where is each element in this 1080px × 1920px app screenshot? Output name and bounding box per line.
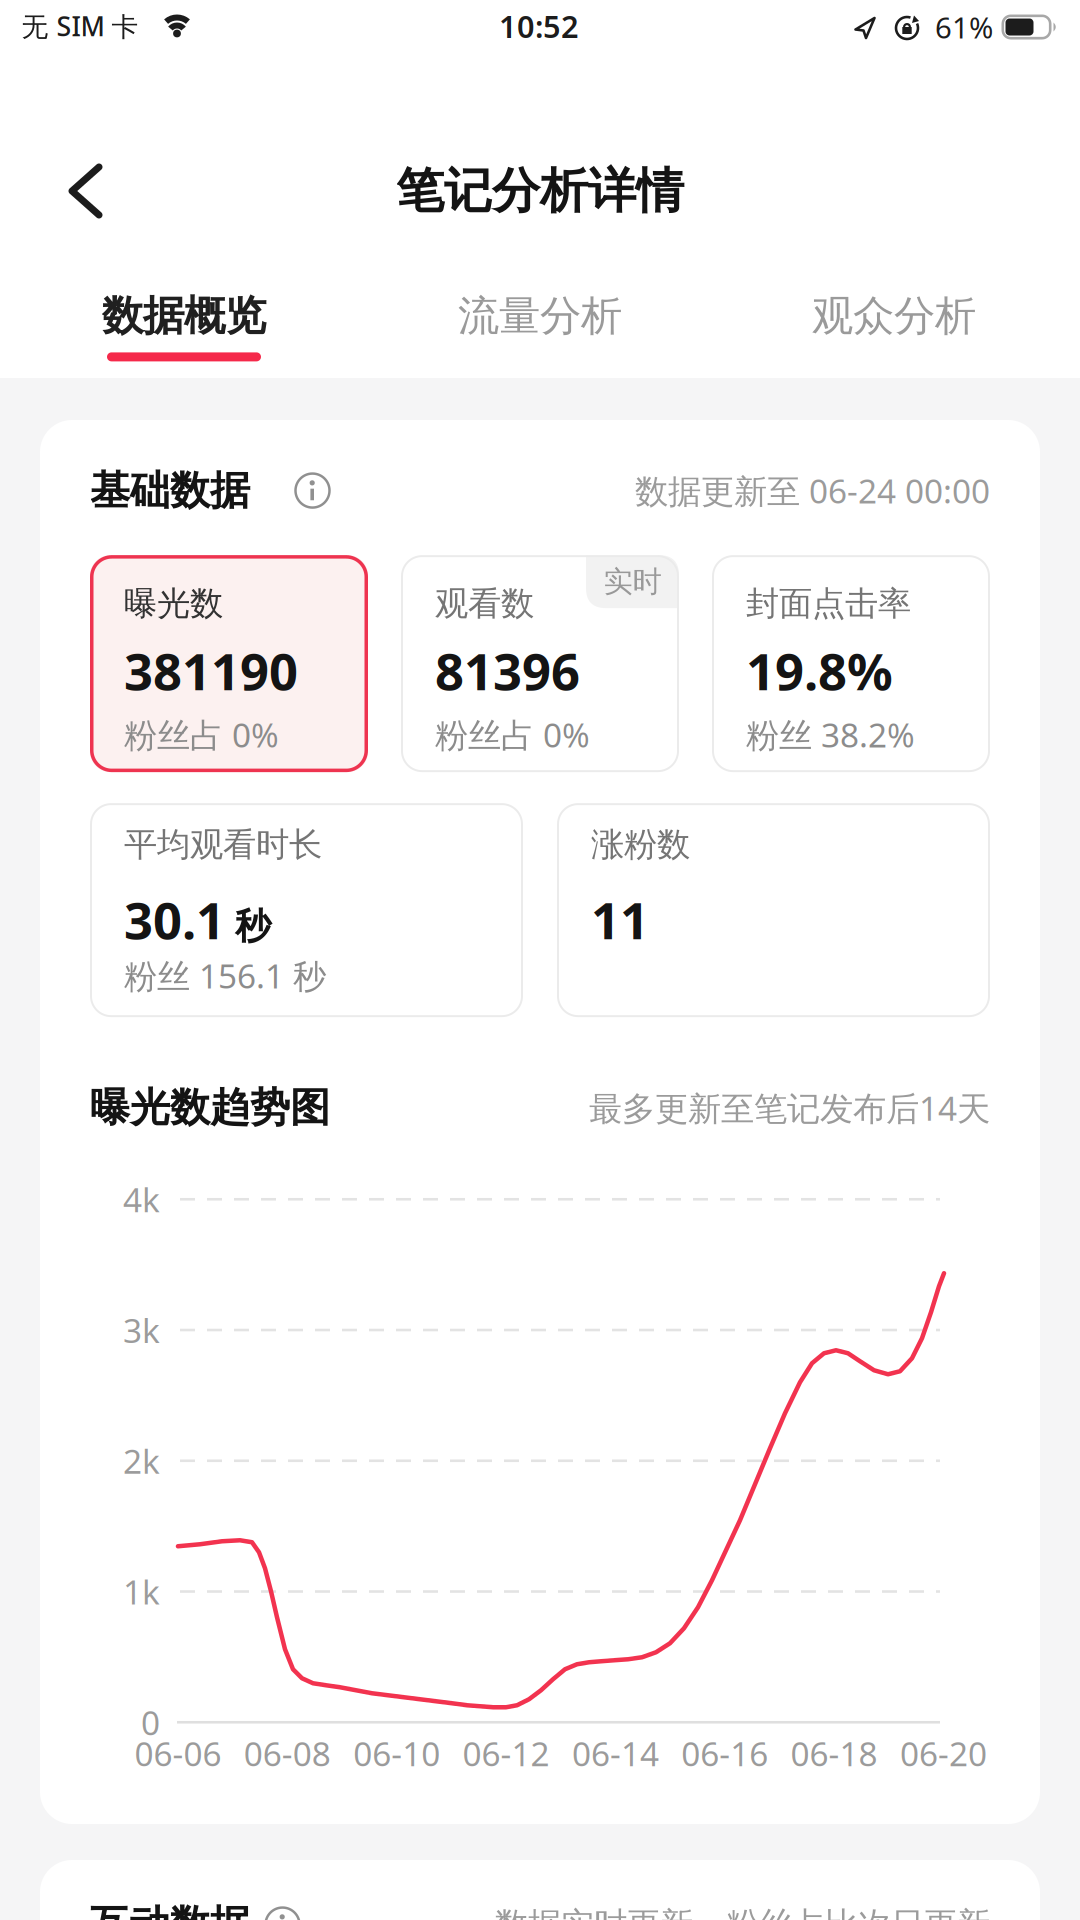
staticText: 数据更新至 06-24 00:00 xyxy=(635,468,990,513)
staticText: 381190 xyxy=(124,637,298,704)
staticText: 平均观看时长 xyxy=(124,824,322,865)
staticText: 61% xyxy=(935,7,993,46)
staticText: 数据概览 xyxy=(102,291,266,341)
staticText: 实时 xyxy=(603,564,661,600)
button[interactable]: 流量分析 xyxy=(380,281,700,371)
staticText: 30.1 xyxy=(124,886,225,953)
staticText: 10:52 xyxy=(499,6,579,46)
staticText: 笔记分析详情 xyxy=(396,161,684,220)
staticText: 封面点击率 xyxy=(746,583,911,624)
staticText: 06-06 xyxy=(134,1731,221,1775)
staticText: 2k xyxy=(123,1439,160,1483)
staticText: 秒 xyxy=(235,904,271,948)
staticText: 81396 xyxy=(435,637,580,704)
staticText: 观众分析 xyxy=(812,291,976,341)
staticText: 19.8% xyxy=(746,637,893,704)
button[interactable]: 封面点击率 xyxy=(712,555,990,772)
staticText: 4k xyxy=(123,1177,160,1221)
staticText: 06-10 xyxy=(353,1731,440,1775)
button[interactable]: 平均观看时长 xyxy=(90,803,523,1017)
staticText: 0 xyxy=(141,1700,160,1744)
staticText: 粉丝 38.2% xyxy=(746,712,915,757)
staticText: 粉丝 156.1 秒 xyxy=(124,953,326,998)
staticText: 曝光数趋势图 xyxy=(90,1083,330,1132)
staticText: 基础数据 xyxy=(90,466,250,515)
staticText: 06-08 xyxy=(244,1731,331,1775)
button[interactable]: 曝光数 xyxy=(90,555,368,772)
button[interactable]: 数据概览 xyxy=(24,281,344,371)
button[interactable] xyxy=(55,156,115,226)
staticText: 06-14 xyxy=(572,1731,659,1775)
staticText: 1k xyxy=(123,1569,160,1614)
button[interactable]: 观众分析 xyxy=(734,281,1054,371)
staticText: 无 SIM 卡 xyxy=(21,8,138,44)
staticText: 曝光数 xyxy=(124,583,223,624)
staticText: 06-12 xyxy=(462,1731,549,1775)
staticText: 涨粉数 xyxy=(591,824,690,865)
button[interactable] xyxy=(264,1906,301,1920)
staticText: 流量分析 xyxy=(458,291,622,341)
staticText: 互动数据 xyxy=(90,1900,250,1920)
staticText: 06-18 xyxy=(791,1731,878,1775)
staticText: 06-16 xyxy=(681,1731,768,1775)
button[interactable]: 观看数 xyxy=(401,555,679,772)
staticText: 最多更新至笔记发布后14天 xyxy=(589,1086,990,1130)
button[interactable] xyxy=(294,472,331,509)
staticText: 观看数 xyxy=(435,583,534,624)
staticText: 数据实时更新，粉丝占比次日更新 xyxy=(495,1904,990,1920)
staticText: 11 xyxy=(591,886,649,953)
staticText: 粉丝占 0% xyxy=(124,712,279,757)
staticText: 06-20 xyxy=(900,1731,987,1775)
button[interactable]: 涨粉数 xyxy=(557,803,990,1017)
staticText: 粉丝占 0% xyxy=(435,712,590,757)
staticText: 3k xyxy=(123,1308,160,1352)
